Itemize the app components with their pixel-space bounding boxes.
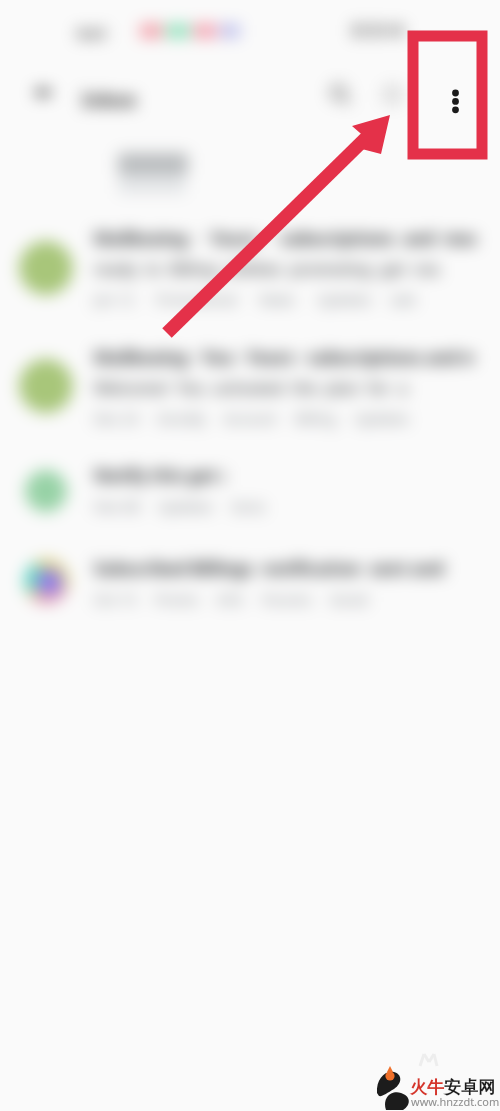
button[interactable]: Search [320,74,360,114]
staticText: Welcome! You activated the plan for a ye… [94,377,409,399]
button[interactable]: Back [22,72,62,112]
staticText: Notify this get now today [94,464,224,487]
button[interactable] [118,150,193,198]
staticText: 9:41 [77,23,107,43]
staticText: Jan 12 Promotional News Updates sale [94,290,416,309]
button[interactable]: Mailboxing · Yours · subscriptions and m… [0,227,500,309]
staticText: Dec 24 Socially Account Billing Updates [94,409,409,428]
staticText: ready to Billing utilities promoting get… [94,258,439,280]
button[interactable]: Mailboxing · You · Yours · subscriptions… [0,346,500,428]
staticText: Nov 08 Updates Social [94,497,264,516]
button[interactable]: Notify this get now today [0,464,500,516]
staticText: 安卓网 [444,1077,495,1098]
staticText: www.hnzzdt.com [411,1094,500,1109]
button[interactable]: Subscribed Billings notification sent an… [0,557,500,609]
button[interactable]: More options [435,72,475,112]
staticText: Mailboxing · Yours · subscriptions and m… [94,227,476,250]
staticText: Oct 15 Promo Info Forums Social [94,590,368,609]
staticText: Subscribed Billings notification sent an… [94,557,449,580]
staticText: Inbox [82,87,137,113]
staticText: Mailboxing · You · Yours · subscriptions… [94,346,474,369]
button[interactable]: Account [372,74,412,114]
staticText: 火牛 [410,1077,444,1098]
